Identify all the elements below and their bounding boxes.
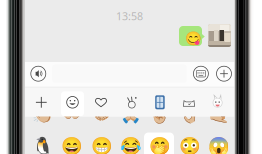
staticText: 😄 xyxy=(61,136,83,154)
button[interactable]: 🤭 xyxy=(146,134,175,154)
staticText: 🤝🏼 xyxy=(90,104,112,124)
staticText: ✌🏼 xyxy=(149,104,171,124)
button[interactable]: Favourites xyxy=(94,95,108,109)
staticText: 😱 xyxy=(208,136,230,154)
button[interactable]: Voice message xyxy=(31,66,46,81)
button[interactable]: 😂 xyxy=(116,134,146,154)
staticText: 🐧 xyxy=(32,136,54,154)
button[interactable]: 😁 xyxy=(87,134,116,154)
staticText: 😂 xyxy=(120,136,142,154)
staticText: 🤙🏼 xyxy=(208,104,230,124)
button[interactable]: 😱 xyxy=(204,134,234,154)
button[interactable]: 😳 xyxy=(175,134,204,154)
staticText: 👌🏼 xyxy=(179,104,201,124)
staticText: 👏🏼 xyxy=(32,104,54,124)
button[interactable]: 😄 xyxy=(57,134,87,154)
staticText: 🤭 xyxy=(149,136,171,154)
button[interactable]: Emoji xyxy=(65,95,79,109)
button[interactable]: Cat sticker pack xyxy=(181,95,197,109)
button[interactable]: Add sticker xyxy=(34,95,48,109)
button[interactable]: 🐧 xyxy=(28,134,57,154)
staticText: 😋 xyxy=(185,30,202,46)
button[interactable]: Hand stickers xyxy=(124,95,138,109)
button[interactable]: Keyboard xyxy=(193,66,208,81)
staticText: 😳 xyxy=(179,136,201,154)
staticText: 😁 xyxy=(90,136,112,154)
button[interactable]: Blue sticker pack xyxy=(154,94,166,110)
button[interactable]: Bunny sticker pack xyxy=(210,94,226,109)
staticText: 🙏🏼 xyxy=(120,104,142,124)
staticText: 👐🏼 xyxy=(61,104,83,124)
button[interactable]: More xyxy=(216,66,231,81)
staticText: 13:58 xyxy=(116,9,143,23)
